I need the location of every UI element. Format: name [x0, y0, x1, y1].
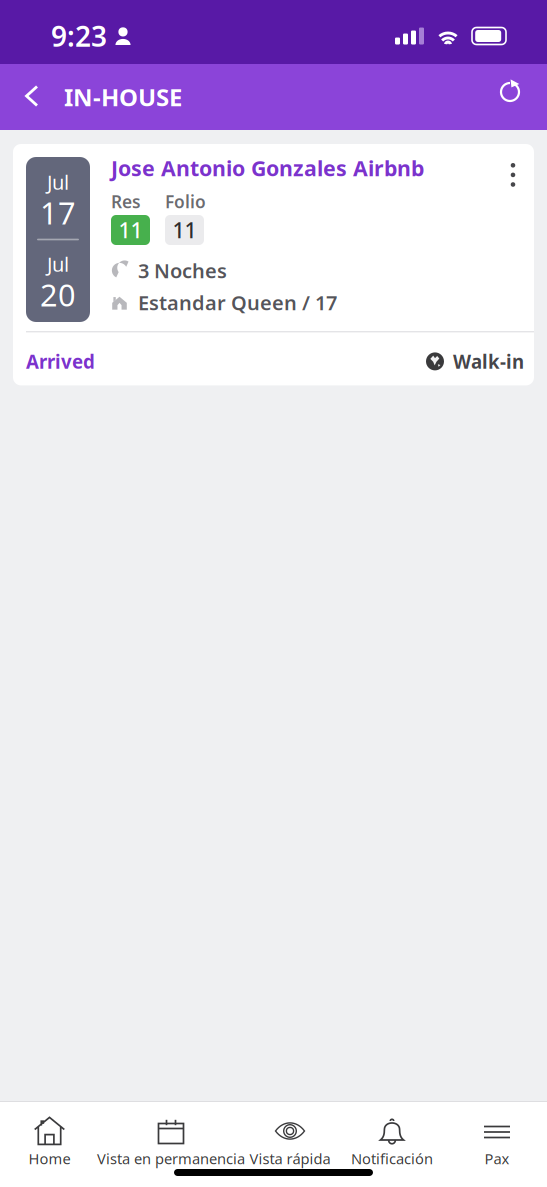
- staticText: 9:23: [51, 17, 107, 55]
- staticText: Res: [111, 190, 141, 213]
- staticText: Arrived: [26, 349, 95, 374]
- button[interactable]: Pax: [447, 1116, 547, 1166]
- button[interactable]: Home: [0, 1116, 99, 1166]
- button[interactable]: More options: [500, 157, 526, 197]
- staticText: 3 Noches: [138, 257, 227, 284]
- staticText: IN-HOUSE: [64, 81, 182, 113]
- staticText: Jul: [47, 251, 69, 277]
- staticText: Jose Antonio Gonzales Airbnb: [111, 154, 424, 182]
- staticText: Folio: [165, 190, 206, 213]
- staticText: Home: [28, 1149, 70, 1168]
- staticText: Vista rápida: [249, 1149, 330, 1168]
- staticText: 11: [172, 216, 196, 244]
- staticText: Walk-in: [453, 349, 524, 374]
- staticText: Jul: [47, 169, 69, 195]
- staticText: 17: [40, 192, 76, 233]
- button[interactable]: Notificación: [337, 1116, 447, 1166]
- staticText: 11: [118, 216, 142, 244]
- staticText: Vista en permanencia: [97, 1149, 245, 1168]
- button[interactable]: Back: [14, 72, 50, 122]
- staticText: 20: [40, 274, 76, 315]
- staticText: Notificación: [351, 1149, 433, 1168]
- button[interactable]: Vista rápida: [243, 1116, 337, 1166]
- staticText: Pax: [484, 1149, 509, 1168]
- button[interactable]: Vista en permanencia: [99, 1116, 243, 1166]
- staticText: Estandar Queen / 17: [138, 289, 337, 316]
- button[interactable]: Refresh: [485, 74, 535, 120]
